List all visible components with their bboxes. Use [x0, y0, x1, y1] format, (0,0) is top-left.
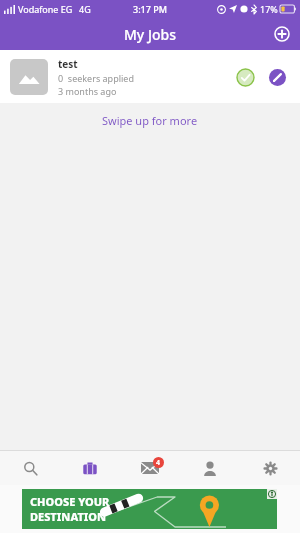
staticText: 0 seekers applied [58, 72, 134, 84]
button[interactable]: Search [0, 451, 60, 485]
staticText: My Jobs [124, 25, 176, 44]
button[interactable]: Edit job [264, 64, 290, 90]
button[interactable]: test [0, 50, 300, 103]
button[interactable]: Ad choices [267, 489, 277, 499]
button[interactable]: Mark active [232, 64, 258, 90]
staticText: 3 months ago [58, 85, 117, 97]
staticText: Vodafone EG [18, 3, 73, 15]
staticText: CHOOSE YOUR [30, 494, 110, 509]
button[interactable]: CHOOSE YOUR [22, 489, 277, 529]
staticText: 4G [79, 3, 91, 15]
staticText: 3:17 PM [133, 3, 167, 15]
staticText: 4 [156, 458, 161, 468]
staticText: Swipe up for more [102, 113, 198, 128]
button[interactable]: My Jobs [60, 451, 120, 485]
staticText: test [58, 57, 78, 71]
staticText: DESTINATION [30, 509, 107, 524]
button[interactable]: Messages, 4 unread [120, 451, 180, 485]
staticText: 17% [260, 3, 278, 15]
button[interactable]: Add job [270, 22, 294, 46]
button[interactable]: Settings [240, 451, 300, 485]
button[interactable]: Profile [180, 451, 240, 485]
